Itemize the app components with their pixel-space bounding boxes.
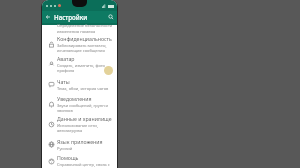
staticText: Русский — [57, 146, 73, 151]
button[interactable]: Badge — [104, 66, 113, 75]
staticText: Язык приложения — [57, 138, 103, 145]
staticText: Помощь — [57, 154, 79, 161]
button[interactable]: Язык приложения — [42, 134, 117, 154]
button[interactable]: Search — [105, 11, 117, 23]
button[interactable]: Back — [42, 11, 54, 23]
button[interactable]: Конфиденциальность — [42, 34, 117, 54]
button[interactable]: Уведомления — [42, 94, 117, 114]
staticText: Определение безопасности — [57, 23, 113, 29]
staticText: Аватар — [57, 55, 75, 62]
staticText: Тема, обои, история чатов — [57, 86, 109, 91]
staticText: Звуки сообщений, групп и звонков — [57, 103, 109, 113]
button[interactable]: Данные и хранилище — [42, 114, 117, 134]
staticText: Заблокировать контакты, исчезающие сообщ… — [57, 43, 107, 53]
staticText: Создать, изменить, фото профиля — [57, 63, 105, 73]
staticText: изменения номера — [57, 29, 96, 33]
staticText: Чаты — [57, 78, 70, 85]
staticText: Использование сети, автозагрузка — [57, 123, 98, 133]
button[interactable]: Аватар — [42, 54, 117, 74]
staticText: Данные и хранилище — [57, 115, 112, 122]
button[interactable]: Помощь — [42, 154, 117, 168]
staticText: Настройки — [54, 13, 105, 21]
staticText: Уведомления — [57, 95, 92, 102]
staticText: Справочный центр, связь с нами, политика… — [57, 162, 113, 168]
button[interactable]: Определение безопасности — [42, 23, 117, 34]
button[interactable]: Чаты — [42, 74, 117, 94]
staticText: Конфиденциальность — [57, 35, 112, 42]
